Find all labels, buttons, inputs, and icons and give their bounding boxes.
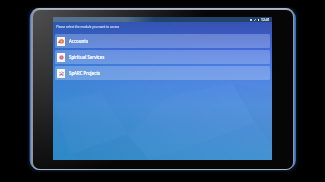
staticText: Accounts <box>69 38 88 44</box>
button[interactable]: Accounts <box>55 34 270 48</box>
button[interactable]: Spiritual Services <box>55 50 270 64</box>
staticText: Spiritual Services <box>69 54 105 60</box>
button[interactable]: SpARC Projects <box>55 66 270 80</box>
staticText: Please select the module you want to acc… <box>56 25 120 29</box>
staticText: 12:41 <box>261 17 270 22</box>
staticText: SpARC Projects <box>69 70 101 76</box>
